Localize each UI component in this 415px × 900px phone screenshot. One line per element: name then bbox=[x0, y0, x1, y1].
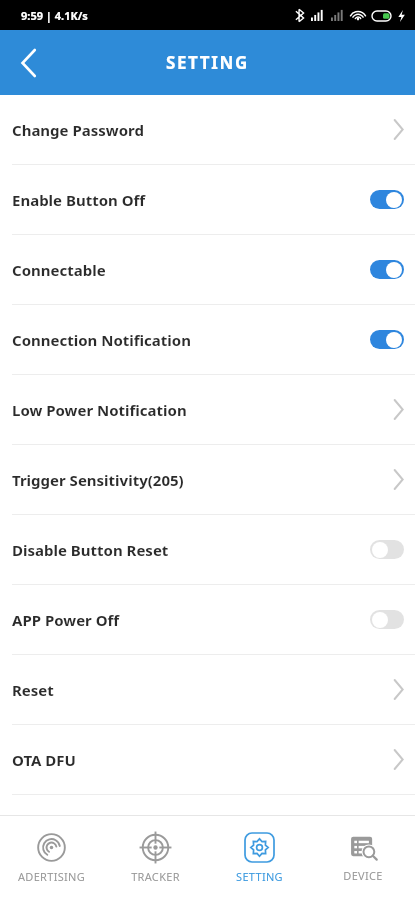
staticText: Disable Button Reset bbox=[12, 540, 370, 560]
button[interactable]: Connection Notification bbox=[0, 305, 415, 374]
button[interactable]: DEVICE bbox=[311, 816, 415, 900]
staticText: TRACKER bbox=[131, 869, 180, 884]
button[interactable]: On bbox=[370, 330, 404, 349]
button[interactable]: On bbox=[370, 260, 404, 279]
staticText: ADERTISING bbox=[18, 869, 85, 884]
button[interactable]: Trigger Sensitivity(205) bbox=[0, 445, 415, 514]
button[interactable]: Disable Button Reset bbox=[0, 515, 415, 584]
button[interactable]: On bbox=[370, 190, 404, 209]
button[interactable]: SETTING bbox=[207, 816, 311, 900]
button[interactable]: ADERTISING bbox=[0, 816, 103, 900]
staticText: DEVICE bbox=[343, 868, 383, 883]
button[interactable]: Off bbox=[370, 540, 404, 559]
staticText: Enable Button Off bbox=[12, 190, 370, 210]
button[interactable]: Connectable bbox=[0, 235, 415, 304]
button[interactable]: APP Power Off bbox=[0, 585, 415, 654]
staticText: Low Power Notification bbox=[12, 400, 393, 420]
button[interactable]: Enable Button Off bbox=[0, 165, 415, 234]
button[interactable]: TRACKER bbox=[103, 816, 207, 900]
staticText: SETTING bbox=[166, 51, 249, 74]
staticText: Connectable bbox=[12, 260, 370, 280]
button[interactable]: OTA DFU bbox=[0, 725, 415, 794]
staticText: APP Power Off bbox=[12, 610, 370, 630]
staticText: Reset bbox=[12, 680, 393, 700]
button[interactable]: Reset bbox=[0, 655, 415, 724]
button[interactable]: Off bbox=[370, 610, 404, 629]
staticText: OTA DFU bbox=[12, 750, 393, 770]
button[interactable]: Back bbox=[0, 35, 56, 91]
staticText: SETTING bbox=[236, 869, 283, 884]
staticText: Connection Notification bbox=[12, 330, 370, 350]
staticText: 9:59 | 4.1K/s bbox=[21, 8, 88, 23]
staticText: Change Password bbox=[12, 120, 393, 140]
button[interactable]: Change Password bbox=[0, 95, 415, 164]
button[interactable]: Low Power Notification bbox=[0, 375, 415, 444]
staticText: Trigger Sensitivity(205) bbox=[12, 470, 393, 490]
